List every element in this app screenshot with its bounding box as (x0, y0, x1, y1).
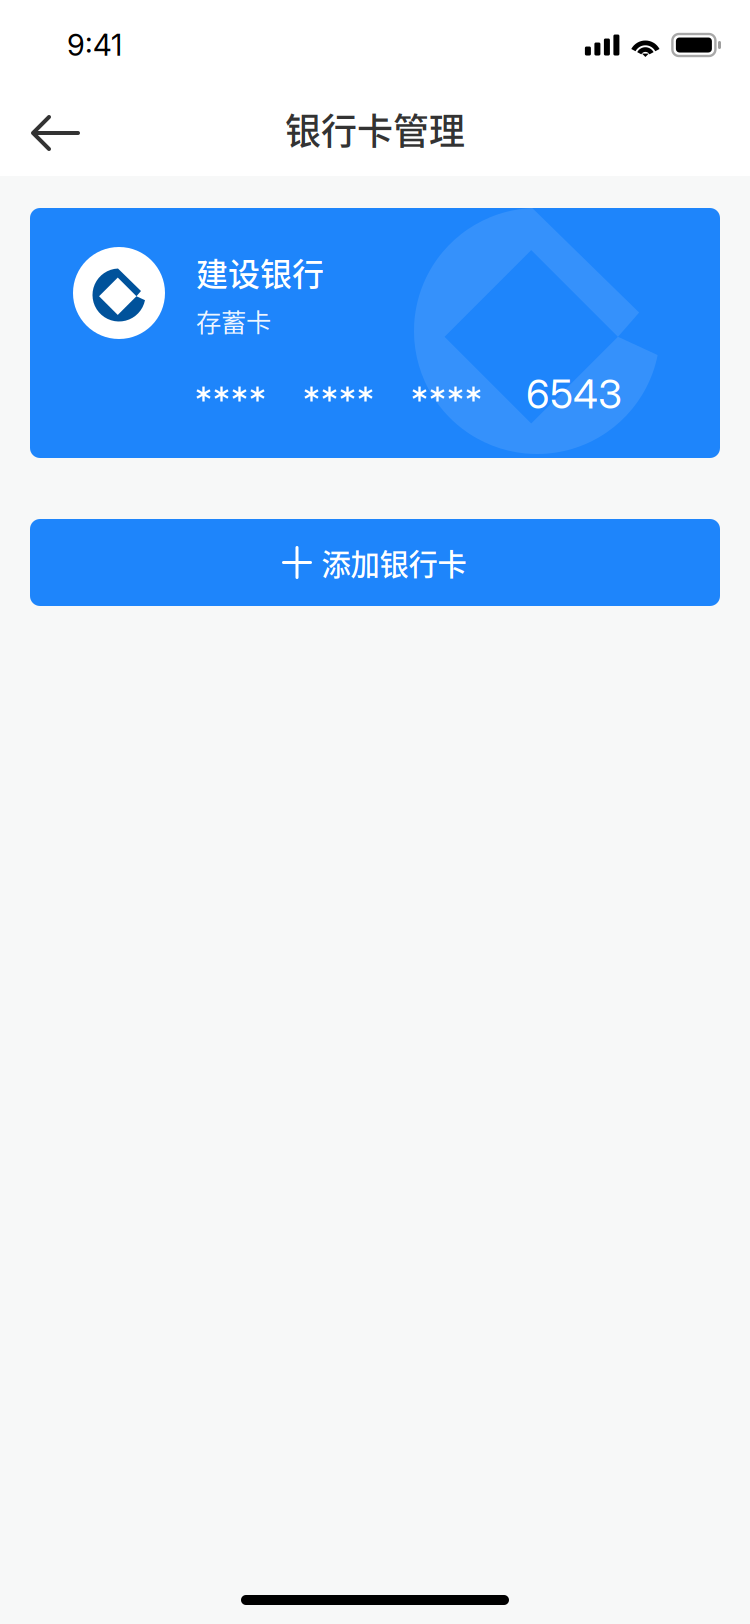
staticText: 存蓄卡 (196, 302, 271, 339)
button[interactable]: Back (13, 95, 98, 171)
staticText: 9:41 (67, 27, 122, 63)
staticText: 添加银行卡 (321, 541, 466, 584)
staticText: 银行卡管理 (285, 103, 465, 155)
staticText: 建设银行 (196, 249, 324, 295)
button[interactable]: 添加银行卡 (30, 519, 720, 606)
staticText: 6543 (526, 370, 622, 418)
